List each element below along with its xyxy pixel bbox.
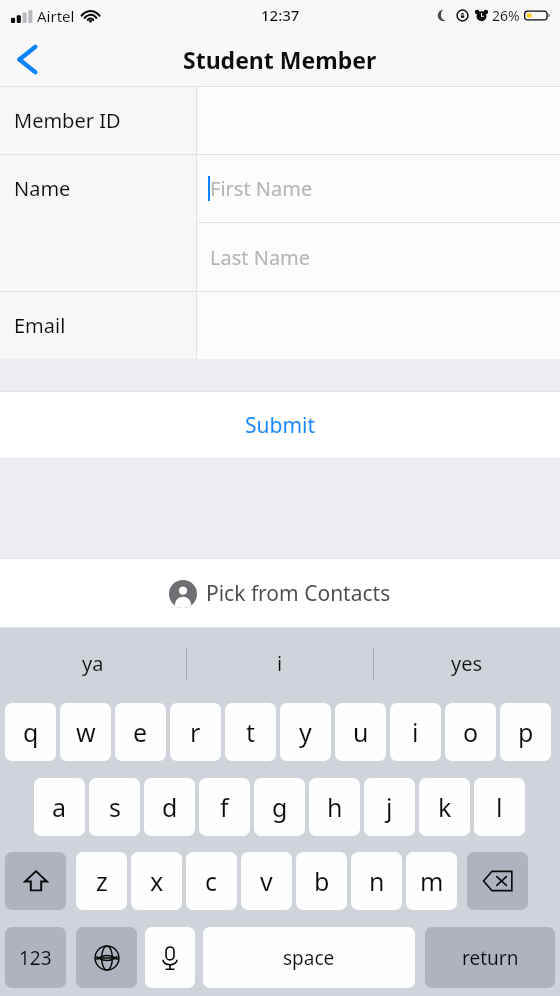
staticText: u [353, 715, 369, 749]
button[interactable]: h [309, 778, 360, 836]
staticText: s [109, 790, 121, 824]
button[interactable]: return [425, 927, 555, 988]
staticText: q [23, 715, 39, 749]
staticText: 12:37 [261, 5, 300, 25]
button[interactable]: a [34, 778, 85, 836]
button[interactable]: s [89, 778, 140, 836]
staticText: space [283, 945, 335, 971]
staticText: i [277, 650, 283, 677]
button[interactable]: g [254, 778, 305, 836]
staticText: v [260, 864, 273, 898]
button[interactable]: d [144, 778, 195, 836]
button[interactable]: First Name [197, 155, 560, 222]
button[interactable]: Shift [5, 852, 66, 910]
staticText: Submit [245, 411, 316, 440]
button[interactable]: j [364, 778, 415, 836]
staticText: m [420, 864, 444, 898]
button[interactable]: Switch keyboard [76, 927, 137, 988]
staticText: a [52, 790, 67, 824]
button[interactable]: 123 [5, 927, 66, 988]
button[interactable]: t [225, 703, 276, 761]
button[interactable]: c [186, 852, 237, 910]
staticText: f [220, 790, 229, 824]
staticText: ya [82, 650, 104, 677]
button[interactable]: Backspace [467, 852, 528, 910]
staticText: Airtel [37, 6, 75, 26]
button[interactable]: f [199, 778, 250, 836]
staticText: yes [451, 650, 483, 677]
button[interactable]: k [419, 778, 470, 836]
staticText: h [327, 790, 343, 824]
button[interactable]: z [76, 852, 127, 910]
button[interactable]: i [187, 628, 373, 699]
staticText: j [386, 790, 393, 824]
staticText: p [518, 715, 534, 749]
button[interactable]: Dictation [145, 927, 195, 988]
button[interactable]: Back [0, 31, 54, 87]
staticText: e [133, 715, 148, 749]
staticText: c [205, 864, 218, 898]
staticText: Member ID [14, 107, 121, 134]
staticText: y [299, 715, 312, 749]
button[interactable]: yes [374, 628, 560, 699]
button[interactable]: space [203, 927, 415, 988]
button[interactable]: Pick from Contacts [0, 559, 560, 627]
staticText: i [412, 715, 419, 749]
button[interactable]: q [5, 703, 56, 761]
staticText: 123 [19, 945, 52, 971]
staticText: return [462, 945, 519, 971]
button[interactable]: o [445, 703, 496, 761]
button[interactable]: i [390, 703, 441, 761]
button[interactable]: e [115, 703, 166, 761]
button[interactable]: n [351, 852, 402, 910]
button[interactable]: y [280, 703, 331, 761]
staticText: w [76, 715, 96, 749]
button[interactable]: Submit [0, 392, 560, 458]
staticText: o [463, 715, 479, 749]
staticText: Name [14, 175, 71, 202]
staticText: l [496, 790, 503, 824]
button[interactable]: r [170, 703, 221, 761]
staticText: k [438, 790, 452, 824]
staticText: n [369, 864, 385, 898]
staticText: z [96, 864, 108, 898]
staticText: Student Member [183, 44, 377, 75]
staticText: b [314, 864, 330, 898]
button[interactable]: m [406, 852, 457, 910]
staticText: x [150, 864, 164, 898]
button[interactable]: Last Name [197, 223, 560, 291]
button[interactable]: p [500, 703, 551, 761]
staticText: First Name [210, 175, 313, 202]
staticText: Pick from Contacts [206, 579, 391, 608]
staticText: Email [14, 312, 66, 339]
staticText: g [272, 790, 288, 824]
staticText: r [190, 715, 201, 749]
button[interactable]: l [474, 778, 525, 836]
button[interactable]: b [296, 852, 347, 910]
staticText: t [246, 715, 256, 749]
staticText: Last Name [210, 244, 311, 271]
button[interactable]: w [60, 703, 111, 761]
staticText: d [162, 790, 178, 824]
button[interactable]: u [335, 703, 386, 761]
button[interactable]: ya [0, 628, 186, 699]
staticText: 26% [492, 6, 520, 25]
button[interactable]: v [241, 852, 292, 910]
button[interactable]: x [131, 852, 182, 910]
